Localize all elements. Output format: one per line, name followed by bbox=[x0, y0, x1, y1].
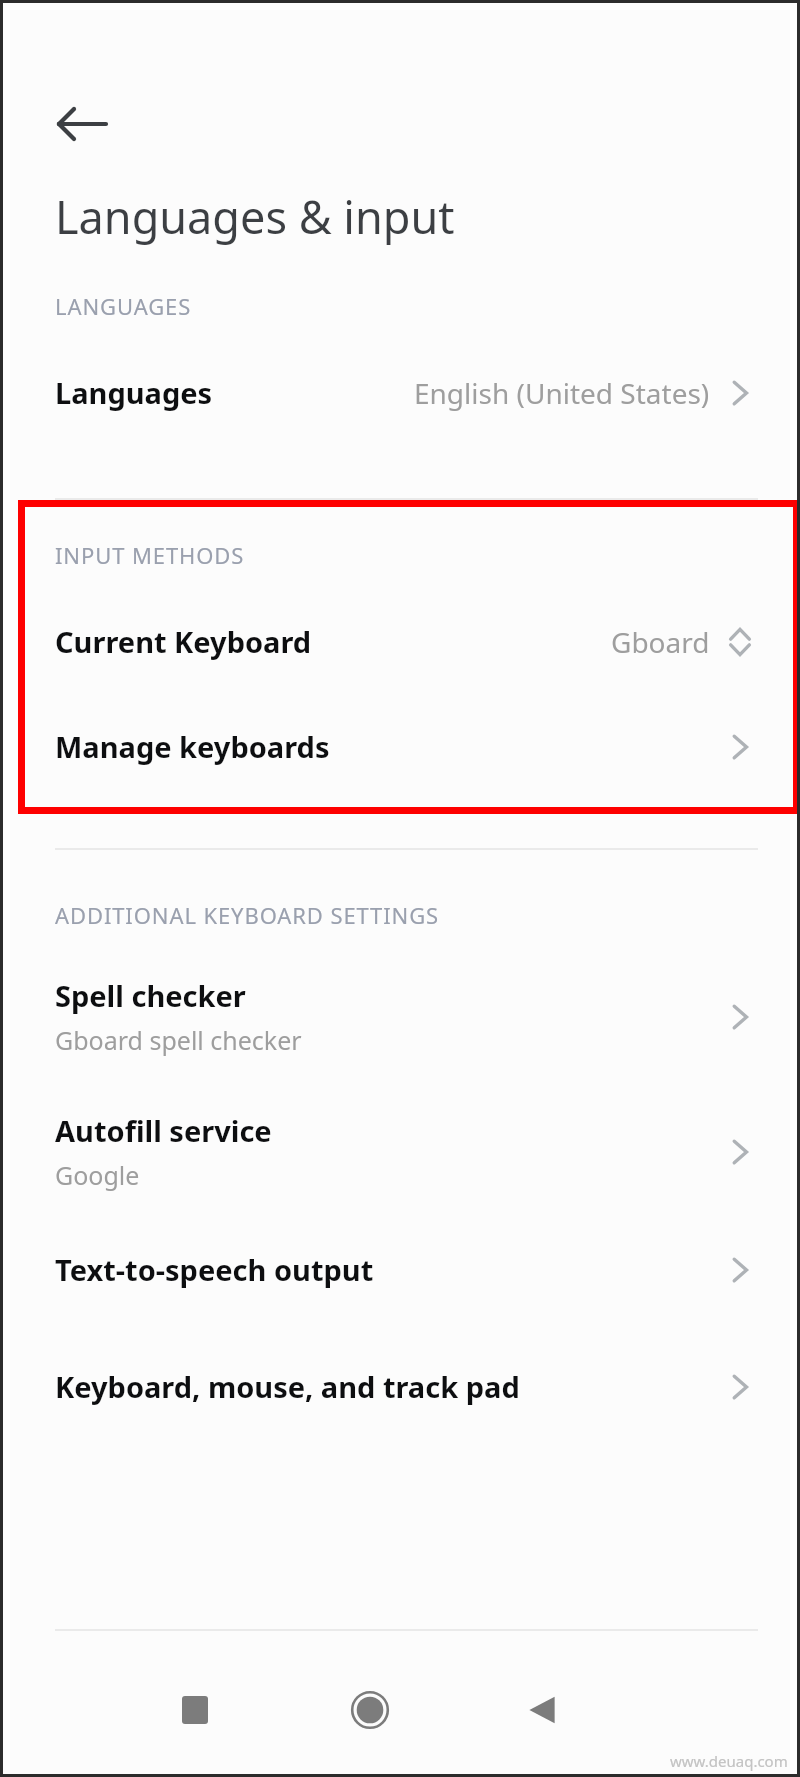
button[interactable]: Back bbox=[507, 1675, 577, 1745]
button[interactable]: Home bbox=[335, 1675, 405, 1745]
button[interactable]: Manage keyboards bbox=[0, 727, 800, 766]
staticText: Text-to-speech output bbox=[55, 1250, 374, 1289]
button[interactable]: Text-to-speech output bbox=[0, 1250, 800, 1289]
staticText: Autofill service bbox=[55, 1111, 272, 1150]
staticText: Keyboard, mouse, and track pad bbox=[55, 1367, 520, 1406]
button[interactable]: Languages bbox=[0, 373, 800, 412]
button[interactable]: Back bbox=[42, 84, 122, 164]
staticText: Languages bbox=[55, 373, 213, 412]
staticText: Google bbox=[55, 1158, 140, 1192]
staticText: Languages & input bbox=[55, 186, 455, 247]
button[interactable]: Recent apps bbox=[160, 1675, 230, 1745]
staticText: English (United States) bbox=[414, 374, 710, 412]
staticText: www.deuaq.com bbox=[670, 1751, 788, 1771]
button[interactable]: Current Keyboard bbox=[0, 622, 800, 661]
button[interactable]: Autofill service bbox=[0, 1111, 800, 1192]
staticText: Manage keyboards bbox=[55, 727, 330, 766]
staticText: LANGUAGES bbox=[55, 291, 192, 321]
staticText: Gboard spell checker bbox=[55, 1023, 302, 1057]
staticText: Spell checker bbox=[55, 976, 246, 1015]
staticText: INPUT METHODS bbox=[55, 540, 245, 570]
staticText: Gboard bbox=[611, 623, 710, 661]
button[interactable]: Spell checker bbox=[0, 976, 800, 1057]
button[interactable]: Keyboard, mouse, and track pad bbox=[0, 1367, 800, 1406]
staticText: Current Keyboard bbox=[55, 622, 312, 661]
staticText: ADDITIONAL KEYBOARD SETTINGS bbox=[55, 900, 440, 930]
